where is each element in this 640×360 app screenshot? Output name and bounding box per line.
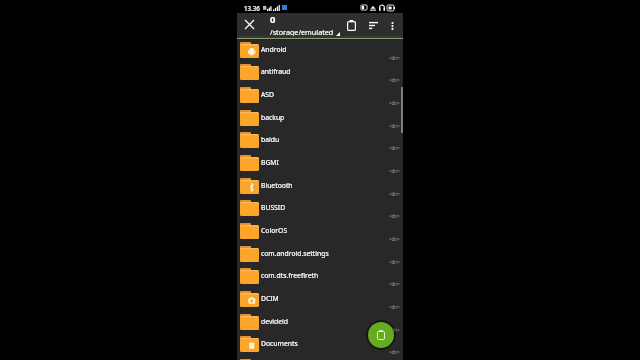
button[interactable]: Android: [237, 38, 403, 61]
button[interactable]: More options: [385, 13, 399, 36]
staticText: BUSSID: [261, 203, 286, 212]
staticText: <dir>: [389, 77, 400, 83]
button[interactable]: BGMI: [237, 151, 403, 174]
staticText: <dir>: [389, 168, 400, 174]
button[interactable]: Close: [237, 13, 261, 36]
staticText: <dir>: [389, 123, 400, 129]
staticText: 0: [270, 13, 276, 26]
staticText: 13.36: [244, 4, 260, 12]
staticText: <dir>: [389, 349, 400, 355]
staticText: com.dts.freefireth: [261, 271, 319, 280]
button[interactable]: devideid: [237, 310, 403, 333]
staticText: Documents: [261, 339, 298, 348]
staticText: <dir>: [389, 259, 400, 265]
button[interactable]: antifraud: [237, 60, 403, 83]
button[interactable]: ColorOS: [237, 219, 403, 242]
staticText: /storage/emulated: [270, 27, 334, 36]
button[interactable]: backup: [237, 106, 403, 129]
staticText: backup: [261, 113, 285, 122]
button[interactable]: DCIM: [237, 287, 403, 310]
staticText: com.android.settings: [261, 249, 329, 258]
staticText: <dir>: [389, 327, 400, 333]
staticText: baidu: [261, 135, 280, 144]
button[interactable]: Clipboard: [341, 13, 361, 36]
staticText: Bluetooth: [261, 181, 293, 190]
button[interactable]: Paste: [368, 322, 394, 348]
staticText: DCIM: [261, 294, 279, 303]
staticText: <dir>: [389, 145, 400, 151]
staticText: BGMI: [261, 158, 279, 167]
staticText: ColorOS: [261, 226, 288, 235]
staticText: Android: [261, 45, 287, 54]
button[interactable]: Documents: [237, 332, 403, 355]
button[interactable]: ASD: [237, 83, 403, 106]
button[interactable]: BUSSID: [237, 196, 403, 219]
button[interactable]: Download: [237, 355, 403, 360]
staticText: devideid: [261, 317, 289, 326]
button[interactable]: com.android.settings: [237, 242, 403, 265]
staticText: <dir>: [389, 100, 400, 106]
button[interactable]: baidu: [237, 128, 403, 151]
staticText: ASD: [261, 90, 275, 99]
staticText: <dir>: [389, 55, 400, 61]
staticText: antifraud: [261, 67, 291, 76]
button[interactable]: Bluetooth: [237, 174, 403, 197]
staticText: <dir>: [389, 213, 400, 219]
staticText: <dir>: [389, 281, 400, 287]
button[interactable]: com.dts.freefireth: [237, 264, 403, 287]
button[interactable]: Sort: [361, 13, 385, 36]
staticText: <dir>: [389, 191, 400, 197]
staticText: <dir>: [389, 236, 400, 242]
staticText: <dir>: [389, 304, 400, 310]
